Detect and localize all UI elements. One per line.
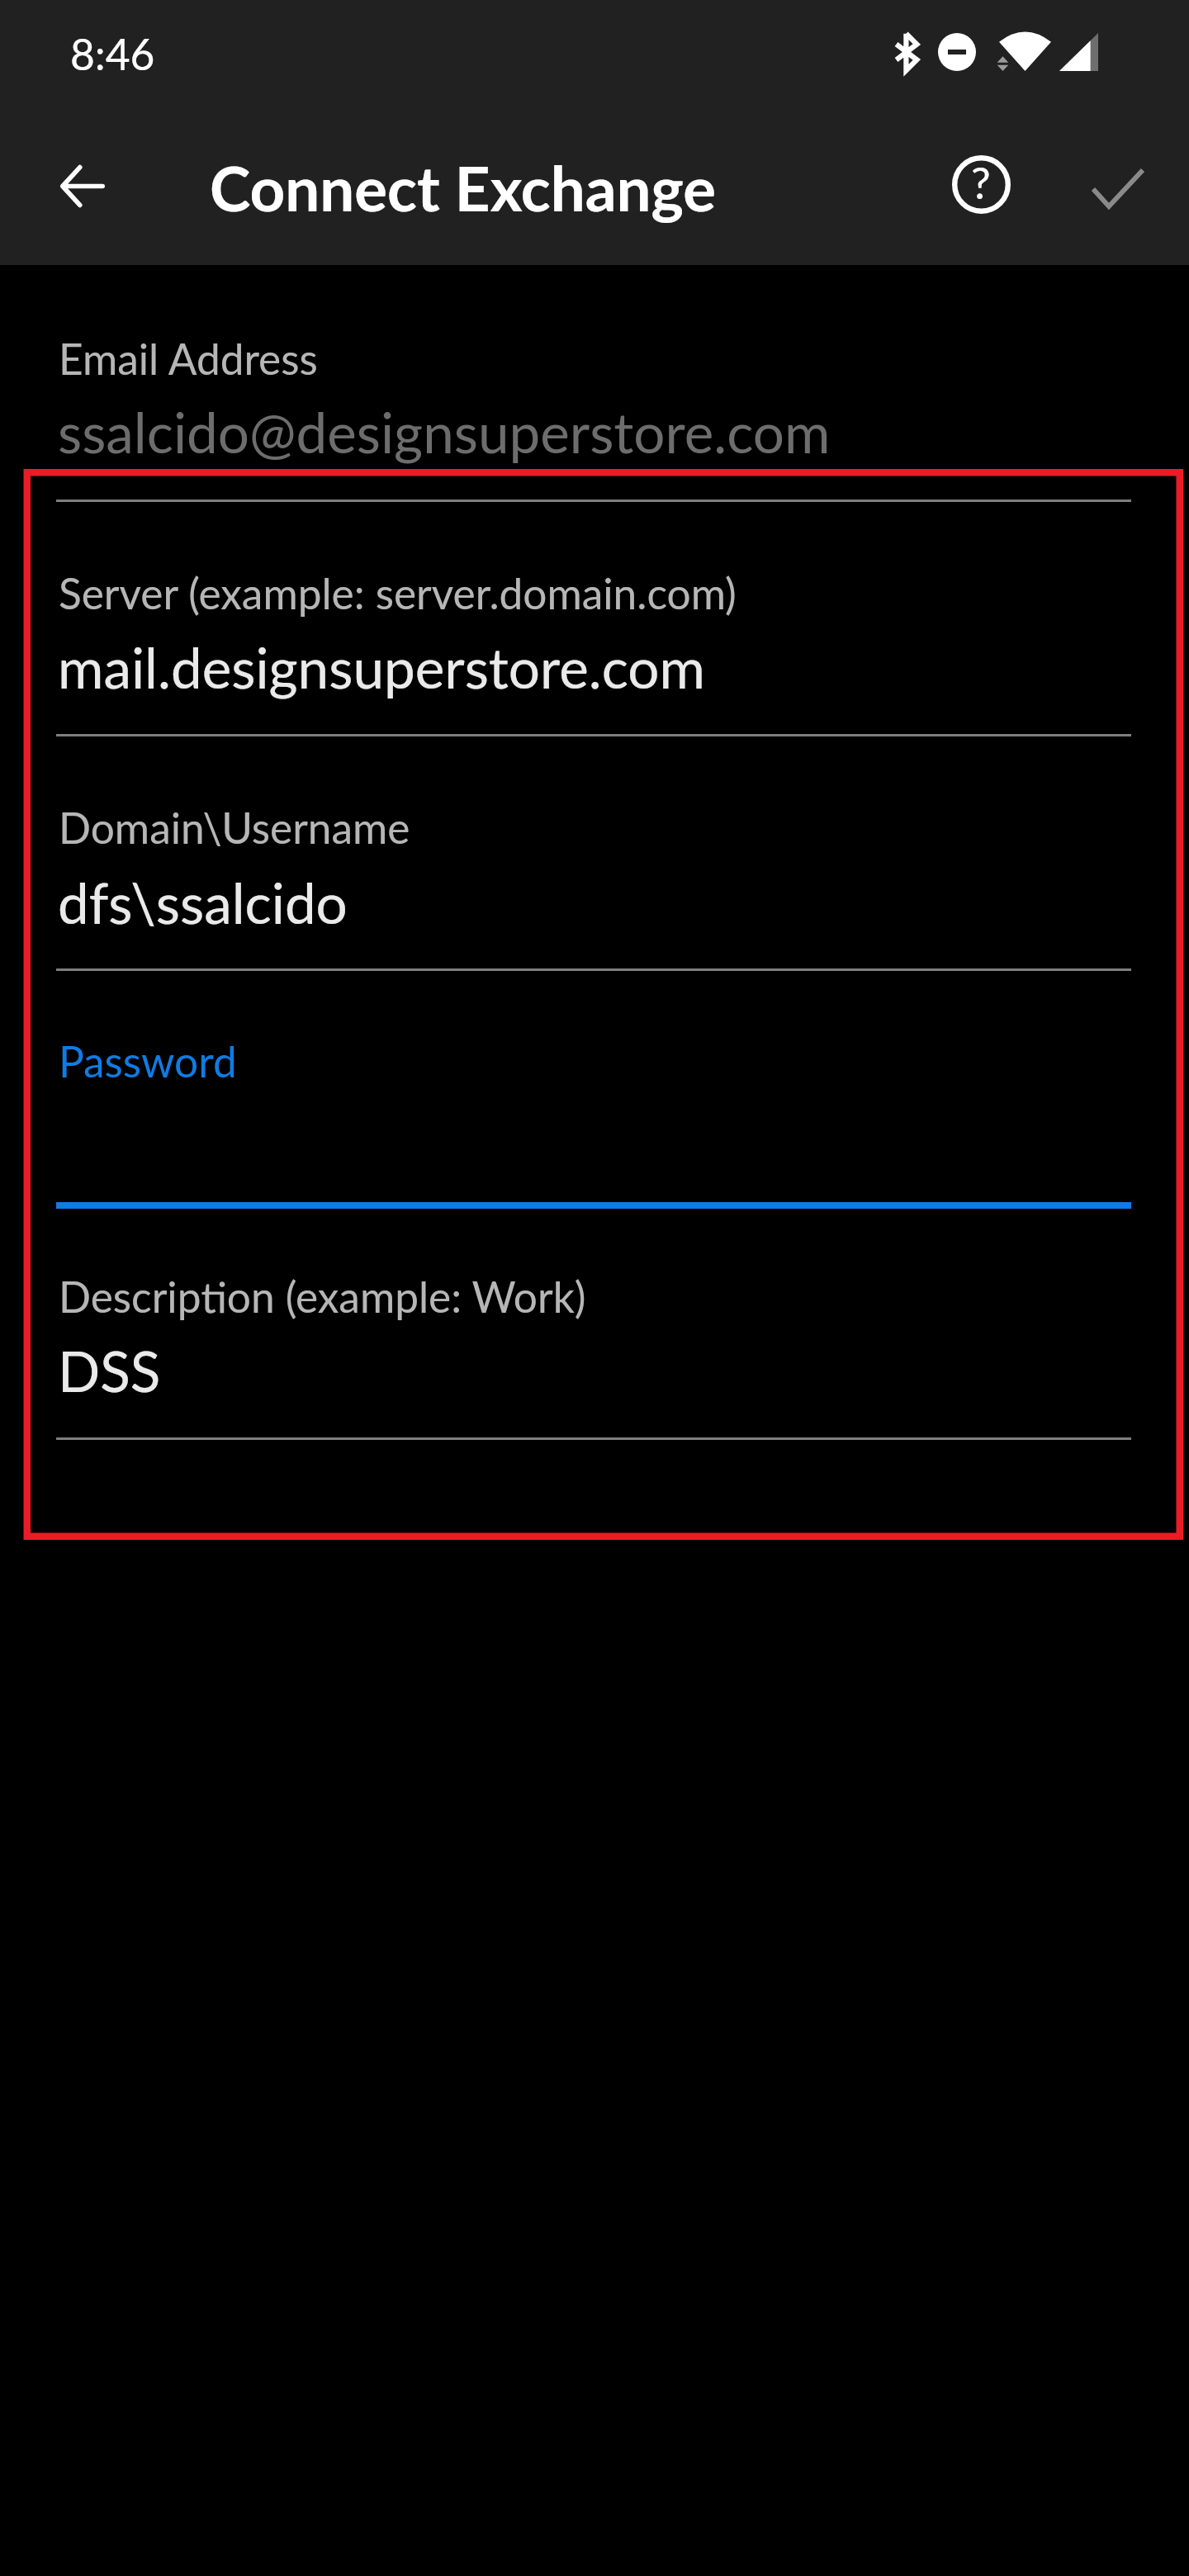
- staticText: ssalcido@designsuperstore.com: [58, 398, 831, 465]
- staticText: Email Address: [59, 333, 318, 384]
- button[interactable]: Description (example: Work): [0, 1209, 1189, 1442]
- staticText: Domain\Username: [59, 802, 410, 853]
- button[interactable]: Navigate up: [33, 131, 142, 240]
- button[interactable]: Help: [926, 130, 1035, 239]
- staticText: Server (example: server.domain.com): [59, 567, 737, 618]
- staticText: Description (example: Work): [59, 1271, 586, 1322]
- button[interactable]: Domain\Username: [0, 738, 1189, 973]
- button[interactable]: Save account: [1063, 130, 1172, 239]
- button[interactable]: Password: [0, 973, 1189, 1209]
- staticText: mail.designsuperstore.com: [58, 633, 705, 700]
- staticText: ?: [971, 156, 991, 209]
- staticText: Password: [59, 1035, 237, 1087]
- staticText: Connect Exchange: [210, 150, 717, 224]
- button[interactable]: Server (example: server.domain.com): [0, 504, 1189, 738]
- button[interactable]: Email Address: [0, 297, 1189, 504]
- staticText: dfs\ssalcido: [58, 869, 348, 935]
- staticText: DSS: [58, 1337, 161, 1404]
- staticText: 8:46: [70, 28, 155, 79]
